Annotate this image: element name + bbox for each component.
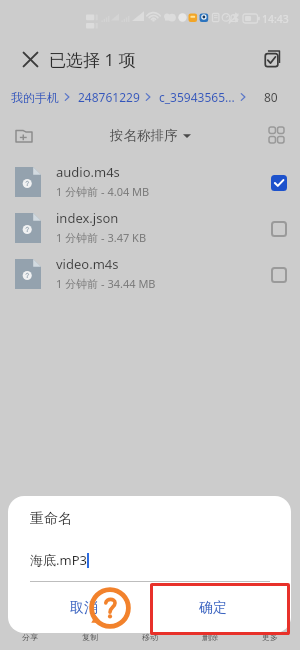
button[interactable]: 分享 [0,606,60,650]
button[interactable]: 确定 [142,582,283,633]
staticText: 我的手机 [11,90,59,105]
staticText: 海底.mP3 [30,551,87,569]
staticText: 重命名 [30,510,72,528]
button[interactable]: Select item [266,216,292,242]
staticText: index.json [56,209,119,227]
staticText: 取消 [70,599,98,617]
staticText: c_35943565... [159,89,235,105]
staticText: 248761229 [78,89,140,105]
staticText: audio.m4s [56,163,120,181]
staticText: 移动 [142,632,158,642]
staticText: 已选择 1 项 [49,48,136,71]
button[interactable]: 248761229 [78,89,140,105]
button[interactable]: c_35943565... [159,89,235,105]
staticText: 1 分钟前 - 4.04 MB [56,184,150,199]
button[interactable]: 取消 [13,582,155,633]
staticText: 1 分钟前 - 3.47 KB [56,230,147,245]
staticText: 80 [264,89,278,105]
button[interactable]: 删除 [180,606,240,650]
staticText: 更多 [262,632,278,642]
button[interactable]: audio.m4s [0,160,300,206]
button[interactable]: 我的手机 [11,90,59,105]
staticText: 1 分钟前 - 34.44 MB [56,276,156,291]
button[interactable]: Select item [266,170,292,196]
staticText: 按名称排序 [110,127,178,144]
button[interactable]: Close [15,44,45,74]
button[interactable]: Grid view [261,120,291,150]
staticText: video.m4s [56,255,119,273]
button[interactable]: video.m4s [0,252,300,298]
button[interactable]: 更多 [240,606,300,650]
staticText: 确定 [199,599,227,617]
button[interactable]: index.json [0,206,300,252]
staticText: 14:43 [262,12,289,26]
button[interactable]: 复制 [60,606,120,650]
button[interactable]: Select item [266,262,292,288]
staticText: 删除 [202,632,218,642]
button[interactable]: 按名称排序 [106,123,195,148]
staticText: 复制 [82,632,98,642]
button[interactable]: New folder [9,120,39,150]
staticText: 分享 [22,632,38,642]
button[interactable]: 移动 [120,606,180,650]
button[interactable]: Select all [258,44,288,74]
